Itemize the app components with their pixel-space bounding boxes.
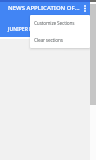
staticText: NEWS APPLICATION OF ... <box>8 4 80 12</box>
button[interactable]: Clear sections <box>30 32 90 48</box>
staticText: Clear sections <box>34 37 63 44</box>
button[interactable]: SECTIONS <box>51 22 90 37</box>
button[interactable]: More options <box>80 2 90 14</box>
staticText: Customize Sections <box>34 20 75 27</box>
staticText: JUNIPER NEWS <box>8 26 44 33</box>
button[interactable]: Customize Sections <box>30 15 90 32</box>
button[interactable]: JUNIPER NEWS <box>0 22 51 37</box>
